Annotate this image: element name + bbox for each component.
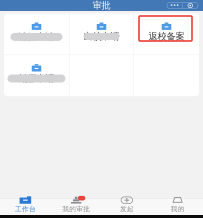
button[interactable]: More (167, 2, 198, 9)
staticText: 销假申请 (18, 73, 54, 84)
staticText: 发起 (120, 205, 134, 213)
staticText: 工作台 (15, 205, 36, 213)
staticText: 审批 (92, 0, 110, 11)
staticText: 我的 (171, 205, 185, 213)
button[interactable]: 我的审批 (51, 198, 102, 215)
staticText: 返校备案 (148, 31, 184, 42)
staticText: ••• (170, 1, 179, 10)
button[interactable]: 发起 (101, 198, 152, 215)
staticText: 我的审批 (62, 205, 90, 213)
button[interactable]: 销假申请 (4, 55, 69, 96)
button[interactable]: 我的 (152, 198, 203, 215)
staticText: 请假申请 (18, 31, 54, 43)
button[interactable]: 出校申请 (69, 13, 134, 54)
button[interactable]: 请假申请 (4, 13, 69, 54)
button[interactable]: 返校备案 (134, 13, 199, 54)
button[interactable]: 工作台 (0, 198, 51, 215)
staticText: 出校申请 (83, 31, 119, 42)
